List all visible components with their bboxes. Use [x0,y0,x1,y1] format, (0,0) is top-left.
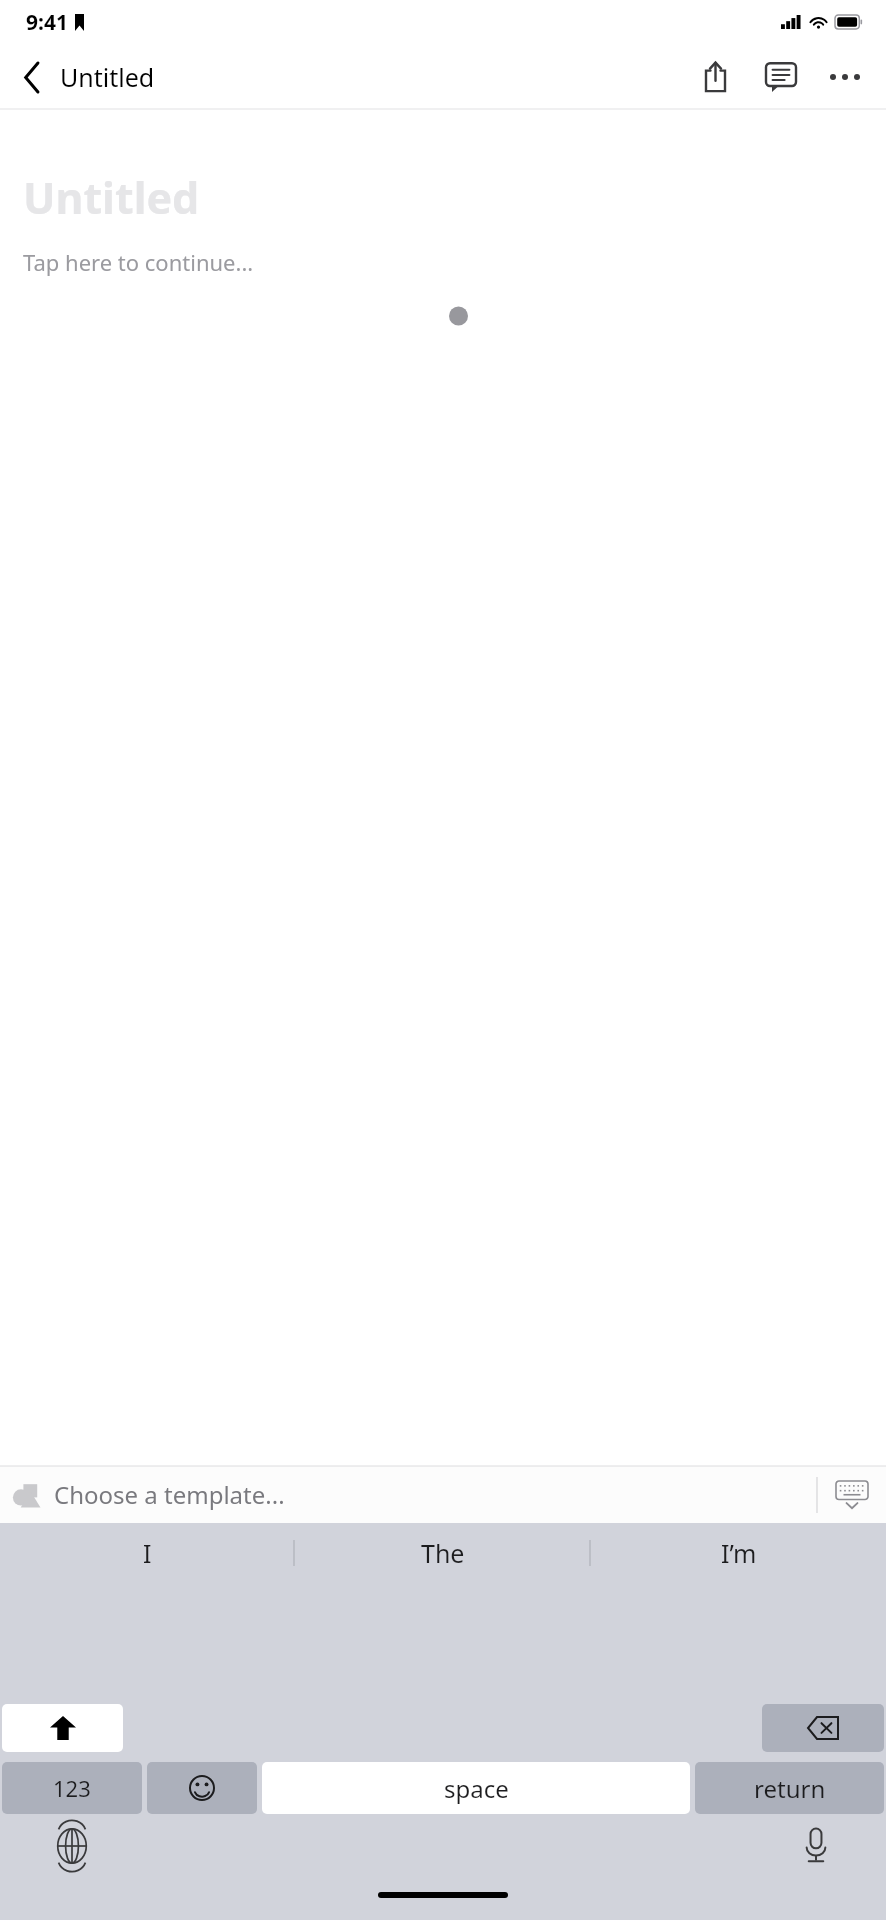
staticText: Untitled [23,168,200,227]
button[interactable]: Back [14,55,51,100]
staticText: 123 [53,1773,91,1803]
staticText: return [754,1772,826,1805]
button[interactable]: return [695,1762,884,1814]
button[interactable]: Share [692,54,738,100]
button[interactable]: Emoji [147,1762,257,1814]
button[interactable]: Choose a template... [0,1466,886,1523]
staticText: I [143,1536,152,1570]
button[interactable]: Hide keyboard [818,1466,886,1523]
button[interactable]: Backspace [762,1704,884,1752]
button[interactable]: I [0,1523,294,1583]
button[interactable]: 123 [2,1762,142,1814]
staticText: 9:41 [26,8,68,37]
staticText: Tap here to continue... [23,247,254,277]
button[interactable]: More options [822,54,868,100]
staticText: Choose a template... [54,1478,285,1511]
button[interactable]: The [295,1523,590,1583]
staticText: I’m [721,1536,757,1570]
staticText: The [421,1536,465,1570]
button[interactable]: I’m [591,1523,886,1583]
staticText: space [444,1772,509,1805]
button[interactable]: space [262,1762,690,1814]
staticText: Untitled [60,60,155,94]
button[interactable]: Shift [2,1704,123,1752]
button[interactable]: Dictate [794,1824,838,1868]
button[interactable]: Change keyboard language [50,1824,94,1868]
button[interactable]: Comments [758,54,804,100]
